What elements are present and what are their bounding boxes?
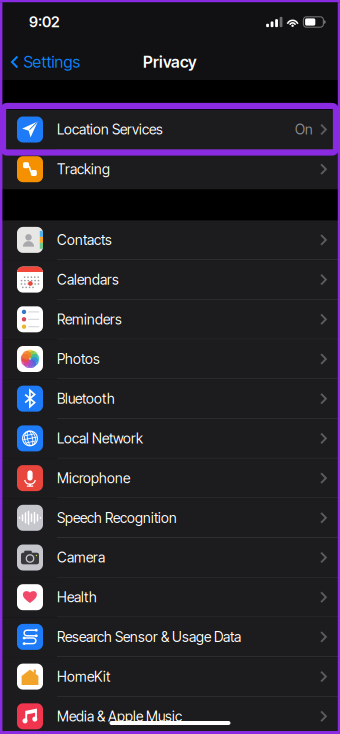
button[interactable]: Media & Apple Music: [0, 697, 340, 734]
staticText: 9:02: [29, 13, 60, 31]
button[interactable]: Bluetooth: [0, 379, 340, 419]
staticText: Calendars: [57, 271, 119, 288]
staticText: Contacts: [57, 231, 112, 248]
button[interactable]: Research Sensor & Usage Data: [0, 617, 340, 657]
staticText: Tracking: [57, 161, 110, 178]
staticText: Settings: [23, 52, 80, 72]
staticText: Media & Apple Music: [57, 708, 182, 725]
staticText: Reminders: [57, 311, 122, 328]
button[interactable]: Location Services: [0, 110, 340, 150]
button[interactable]: Photos: [0, 339, 340, 379]
staticText: Camera: [57, 549, 105, 566]
button[interactable]: Microphone: [0, 459, 340, 498]
button[interactable]: HomeKit: [0, 657, 340, 697]
button[interactable]: Calendars: [0, 260, 340, 300]
staticText: HomeKit: [57, 668, 110, 685]
staticText: Microphone: [57, 470, 130, 486]
staticText: Health: [57, 589, 97, 606]
staticText: Bluetooth: [57, 390, 115, 407]
button[interactable]: Local Network: [0, 419, 340, 459]
button[interactable]: Health: [0, 578, 340, 617]
button[interactable]: Tracking: [0, 150, 340, 189]
button[interactable]: Reminders: [0, 300, 340, 339]
button[interactable]: Camera: [0, 538, 340, 578]
staticText: Privacy: [143, 52, 197, 72]
staticText: Speech Recognition: [57, 509, 177, 526]
button[interactable]: Settings: [0, 43, 90, 81]
staticText: Local Network: [57, 430, 143, 447]
staticText: On: [295, 121, 313, 138]
staticText: Location Services: [57, 121, 163, 138]
button[interactable]: Speech Recognition: [0, 498, 340, 538]
button[interactable]: Contacts: [0, 220, 340, 260]
staticText: Research Sensor & Usage Data: [57, 628, 241, 645]
staticText: Photos: [57, 350, 100, 367]
